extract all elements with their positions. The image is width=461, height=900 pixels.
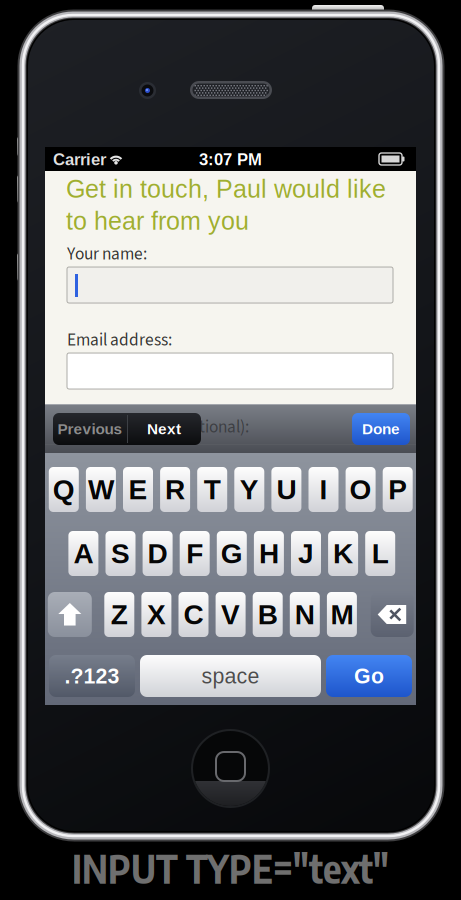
staticText: K [333,538,353,569]
staticText: Z [111,599,128,630]
staticText: Phone number (optional): [67,415,249,439]
button[interactable]: Next [127,413,201,445]
staticText: A [73,538,93,569]
button[interactable]: Shift [48,592,92,637]
button[interactable]: O [346,467,376,512]
button[interactable]: F [180,531,210,576]
staticText: F [186,538,203,569]
staticText: N [295,599,315,630]
button[interactable]: M [327,592,357,637]
button[interactable]: S [105,531,135,576]
staticText: I [319,474,327,505]
staticText: Done [362,420,400,437]
staticText: Next [147,420,181,437]
staticText: J [298,538,314,569]
button[interactable]: C [178,592,208,637]
button[interactable]: Go [326,655,412,697]
button[interactable]: R [160,467,190,512]
staticText: Get in touch, Paul would like [66,175,386,203]
staticText: Your name: [67,242,147,266]
staticText: Y [240,474,259,505]
button[interactable]: Delete [371,592,414,637]
staticText: W [88,474,114,505]
staticText: H [259,538,279,569]
button[interactable]: Previous [53,413,127,445]
button[interactable]: A [68,531,98,576]
button[interactable]: J [291,531,321,576]
button[interactable]: H [254,531,284,576]
staticText: D [148,538,168,569]
staticText: G [221,538,243,569]
button[interactable]: I [308,467,338,512]
staticText: U [276,474,296,505]
staticText: Carrier [53,150,106,169]
button[interactable]: X [141,592,171,637]
button[interactable]: D [143,531,173,576]
button[interactable]: .?123 [49,655,135,697]
staticText: O [350,474,372,505]
staticText: S [111,538,130,569]
button[interactable]: E [123,467,153,512]
staticText: Email address: [67,328,172,352]
staticText: C [183,599,203,630]
staticText: X [147,599,166,630]
button[interactable]: N [290,592,320,637]
button[interactable]: L [365,531,395,576]
button[interactable]: space [140,655,321,697]
button[interactable]: W [86,467,116,512]
staticText: B [258,599,278,630]
staticText: M [330,599,353,630]
staticText: E [128,474,147,505]
staticText: 3:07 PM [199,150,262,169]
staticText: Previous [57,420,122,437]
staticText: Q [53,474,75,505]
button[interactable]: B [253,592,283,637]
staticText: INPUT TYPE="text" [72,844,389,892]
button[interactable]: U [271,467,301,512]
button[interactable]: K [328,531,358,576]
staticText: P [388,474,407,505]
button[interactable]: Done [352,413,410,445]
button[interactable]: P [383,467,413,512]
staticText: T [204,474,221,505]
staticText: Go [354,664,384,688]
button[interactable]: Q [49,467,79,512]
staticText: to hear from you [66,207,249,235]
button[interactable]: Z [104,592,134,637]
button[interactable]: G [217,531,247,576]
button[interactable]: Y [234,467,264,512]
staticText: .?123 [64,664,119,688]
staticText: R [165,474,185,505]
button[interactable]: T [197,467,227,512]
staticText: space [201,664,259,688]
button[interactable]: V [216,592,246,637]
staticText: L [372,538,389,569]
staticText: V [221,599,240,630]
